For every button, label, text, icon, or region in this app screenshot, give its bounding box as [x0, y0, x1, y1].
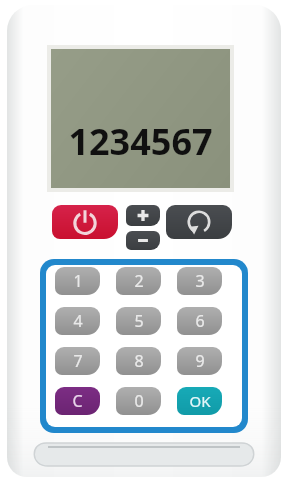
staticText: 1234567: [68, 117, 213, 166]
staticText: 0: [134, 390, 144, 412]
button[interactable]: Increase: [126, 205, 160, 226]
button[interactable]: 9: [177, 347, 222, 375]
button[interactable]: Decrease: [126, 231, 160, 250]
staticText: 7: [73, 350, 83, 372]
button[interactable]: 1: [55, 267, 100, 295]
button[interactable]: C: [55, 387, 100, 415]
button[interactable]: 2: [116, 267, 161, 295]
button[interactable]: OK: [177, 387, 222, 415]
staticText: 1: [73, 270, 83, 292]
staticText: 2: [134, 270, 144, 292]
button[interactable]: 4: [55, 307, 100, 335]
staticText: 3: [195, 270, 205, 292]
button[interactable]: Correct: [166, 205, 232, 239]
button[interactable]: Power: [52, 205, 118, 239]
staticText: 6: [195, 310, 205, 332]
staticText: 9: [195, 350, 205, 372]
staticText: 8: [134, 350, 144, 372]
button[interactable]: 5: [116, 307, 161, 335]
button[interactable]: 6: [177, 307, 222, 335]
button[interactable]: 3: [177, 267, 222, 295]
button[interactable]: 0: [116, 387, 161, 415]
button[interactable]: 8: [116, 347, 161, 375]
staticText: OK: [189, 391, 211, 411]
button[interactable]: 7: [55, 347, 100, 375]
staticText: C: [72, 390, 83, 412]
staticText: 4: [73, 310, 83, 332]
staticText: 5: [134, 310, 144, 332]
